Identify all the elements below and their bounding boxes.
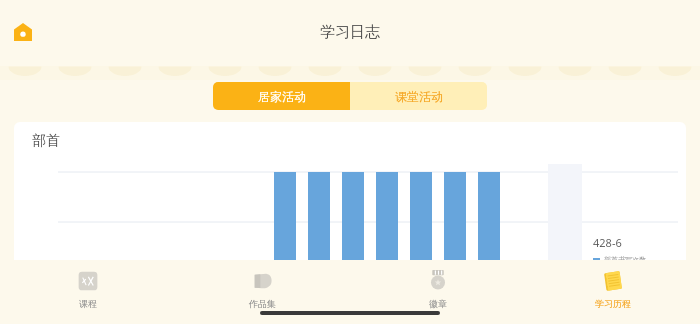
staticText: 428-6 xyxy=(593,235,622,250)
button[interactable]: Home xyxy=(6,15,40,49)
staticText: 居家活动 xyxy=(258,89,306,104)
button[interactable]: 徽章 xyxy=(350,260,525,324)
button[interactable]: 学习历程 xyxy=(525,260,700,324)
staticText: 学习日志 xyxy=(320,23,380,42)
staticText: 课堂活动 xyxy=(395,89,443,104)
button[interactable]: 课堂活动 xyxy=(350,82,487,110)
staticText: 徽章 xyxy=(429,298,447,309)
button[interactable]: 作品集 xyxy=(175,260,350,324)
staticText: 部首 xyxy=(32,132,60,150)
button[interactable]: 居家活动 xyxy=(213,82,350,110)
button[interactable]: 课程 xyxy=(0,260,175,324)
staticText: 课程 xyxy=(79,298,97,309)
staticText: 作品集 xyxy=(249,298,276,309)
staticText: 部首书写次数 xyxy=(604,255,646,264)
staticText: 学习历程 xyxy=(595,298,631,309)
